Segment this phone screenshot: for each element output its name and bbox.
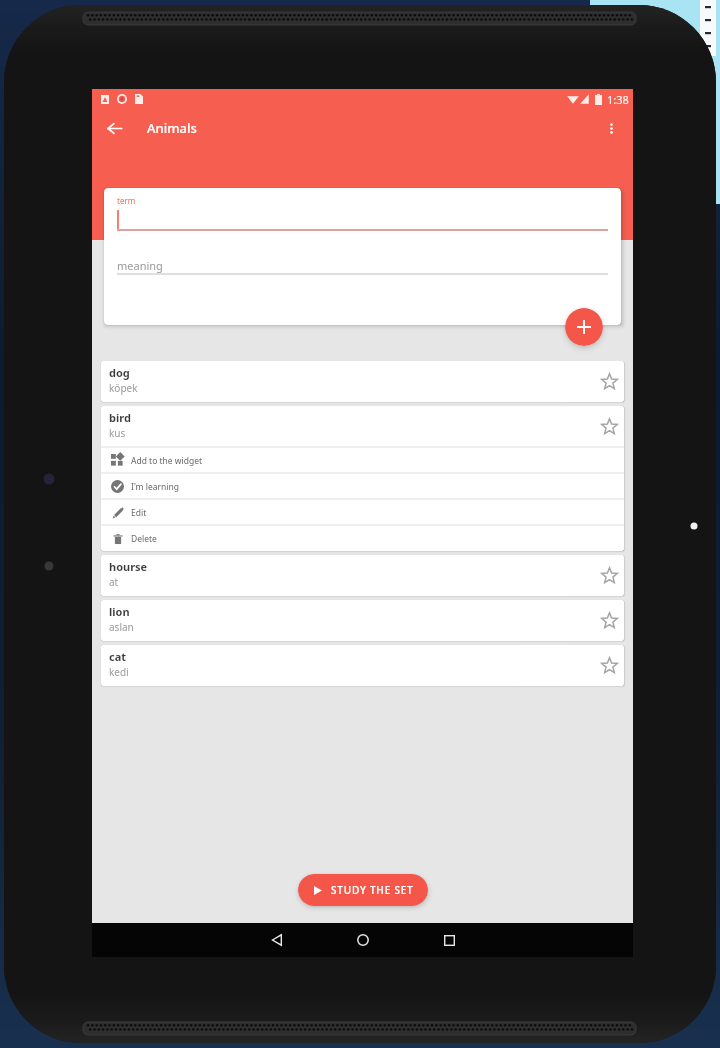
- staticText: Edit: [131, 507, 147, 519]
- staticText: hourse: [109, 559, 148, 574]
- button[interactable]: bird: [101, 406, 624, 447]
- staticText: I'm learning: [131, 481, 179, 493]
- staticText: 1:38: [607, 92, 629, 107]
- button[interactable]: I'm learning: [101, 474, 624, 499]
- button[interactable]: Home: [320, 923, 406, 957]
- button[interactable]: Recents: [406, 923, 492, 957]
- staticText: term: [117, 195, 136, 206]
- staticText: cat: [109, 649, 127, 664]
- staticText: lion: [109, 604, 130, 619]
- button[interactable]: Favourite: [594, 411, 624, 441]
- button[interactable]: Favourite: [594, 650, 624, 680]
- staticText: bird: [109, 410, 131, 425]
- button[interactable]: STUDY THE SET: [298, 874, 428, 906]
- staticText: Add to the widget: [131, 455, 203, 467]
- button[interactable]: cat: [101, 645, 624, 686]
- staticText: at: [109, 575, 119, 589]
- staticText: meaning: [117, 258, 163, 273]
- button[interactable]: More options: [589, 106, 633, 150]
- button[interactable]: Favourite: [594, 366, 624, 396]
- staticText: aslan: [109, 620, 134, 634]
- button[interactable]: Delete: [101, 526, 624, 551]
- button[interactable]: Back: [234, 923, 320, 957]
- staticText: STUDY THE SET: [331, 883, 414, 897]
- button[interactable]: hourse: [101, 555, 624, 596]
- staticText: kus: [109, 426, 126, 440]
- button[interactable]: Favourite: [594, 605, 624, 635]
- button[interactable]: Add term: [565, 308, 603, 346]
- staticText: köpek: [109, 381, 138, 395]
- button[interactable]: Back: [92, 106, 136, 150]
- button[interactable]: Add to the widget: [101, 448, 624, 473]
- button[interactable]: Favourite: [594, 560, 624, 590]
- staticText: Delete: [131, 533, 157, 545]
- button[interactable]: dog: [101, 361, 624, 402]
- staticText: kedi: [109, 665, 129, 679]
- button[interactable]: lion: [101, 600, 624, 641]
- staticText: Animals: [147, 119, 197, 137]
- button[interactable]: Edit: [101, 500, 624, 525]
- staticText: dog: [109, 365, 130, 380]
